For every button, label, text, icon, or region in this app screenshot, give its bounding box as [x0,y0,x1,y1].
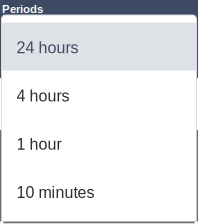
button[interactable]: 4 hours [1,71,196,119]
button[interactable]: 1 hour [1,119,196,167]
button[interactable]: 10 minutes [1,167,196,216]
staticText: 10 minutes [16,184,94,201]
button[interactable]: 24 hours [1,22,196,71]
staticText: 1 hour [16,135,61,153]
staticText: Periods [2,3,43,15]
staticText: 24 hours [16,39,78,57]
staticText: 4 hours [16,87,69,105]
